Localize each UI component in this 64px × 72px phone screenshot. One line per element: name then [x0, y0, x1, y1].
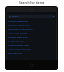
staticText: Bluetooth speaker mini: [8, 24, 30, 27]
staticText: Smart watch charger dock: [8, 28, 33, 31]
button[interactable]: Smart watch charger dock: [8, 27, 55, 31]
button[interactable]: Search: [8, 15, 55, 18]
button[interactable]: Screen protector glass: [8, 43, 55, 47]
staticText: Search: [12, 15, 19, 18]
button[interactable]: Bluetooth speaker mini: [8, 23, 55, 27]
button[interactable]: Wireless headphones: [8, 19, 55, 23]
button[interactable]: Home: [29, 63, 34, 68]
staticText: Laptop stand aluminium: [8, 48, 31, 51]
staticText: Wireless headphones: [8, 20, 29, 23]
button[interactable]: Laptop stand aluminium: [8, 47, 55, 51]
staticText: USB-C cable braided: [8, 32, 28, 35]
button[interactable]: Phone case clear: [8, 39, 55, 43]
button[interactable]: USB-C cable braided: [8, 31, 55, 35]
staticText: Screen protector glass: [8, 44, 29, 47]
button[interactable]: Desk lamp LED: [8, 51, 55, 55]
staticText: Phone case clear: [8, 40, 24, 43]
button[interactable]: Portable power bank: [8, 35, 55, 39]
staticText: Portable power bank: [8, 36, 28, 39]
staticText: Desk lamp LED: [8, 52, 23, 55]
staticText: Search for items: [19, 1, 45, 5]
